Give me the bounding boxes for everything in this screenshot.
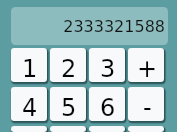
button[interactable]: * (128, 126, 164, 132)
button[interactable]: 3 (89, 48, 125, 82)
staticText: 5 (61, 94, 77, 122)
button[interactable]: + (128, 48, 164, 82)
staticText: 6 (100, 94, 116, 122)
button[interactable]: 1 (11, 48, 47, 82)
button[interactable]: 4 (11, 87, 47, 121)
button[interactable]: 6 (89, 87, 125, 121)
button[interactable]: 7 (11, 126, 47, 132)
button[interactable]: - (128, 87, 164, 121)
button[interactable]: 5 (50, 87, 86, 121)
staticText: - (143, 94, 152, 122)
staticText: 1 (22, 55, 38, 83)
staticText: 3 (100, 55, 116, 83)
staticText: 2333321588 (63, 17, 165, 36)
staticText: 4 (22, 94, 38, 122)
button[interactable]: 2 (50, 48, 86, 82)
staticText: + (137, 55, 158, 83)
button[interactable]: 9 (89, 126, 125, 132)
button[interactable]: 8 (50, 126, 86, 132)
staticText: 2 (61, 55, 77, 83)
